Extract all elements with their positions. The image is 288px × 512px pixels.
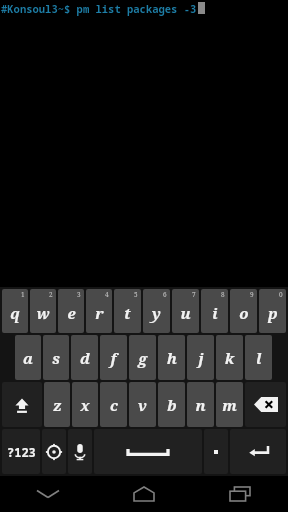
button[interactable] — [204, 429, 228, 474]
staticText: 3 — [77, 290, 81, 299]
button[interactable]: b — [158, 382, 185, 427]
staticText: c — [110, 395, 118, 415]
staticText: n — [195, 395, 206, 415]
button[interactable]: ?123 — [2, 429, 40, 474]
staticText: 6 — [163, 290, 167, 299]
staticText: h — [167, 348, 177, 368]
staticText: v — [138, 395, 147, 415]
staticText: j — [198, 348, 204, 368]
staticText: s — [52, 348, 60, 368]
other: Input settings — [41, 429, 67, 474]
button[interactable]: v — [129, 382, 156, 427]
button[interactable] — [68, 429, 92, 474]
staticText: y — [152, 303, 161, 323]
button[interactable]: j — [187, 335, 214, 380]
button[interactable]: 0 — [259, 289, 286, 333]
other: Space — [93, 429, 203, 474]
button[interactable]: z — [44, 382, 70, 427]
staticText: 2 — [49, 290, 53, 299]
staticText: 5 — [134, 290, 138, 299]
button[interactable]: 1 — [2, 289, 28, 333]
button[interactable]: m — [216, 382, 243, 427]
staticText: 9 — [250, 290, 254, 299]
staticText: q — [10, 303, 20, 323]
staticText: o — [239, 303, 249, 323]
staticText: 0 — [279, 290, 283, 299]
other: Backspace — [244, 382, 287, 427]
staticText: i — [212, 303, 218, 323]
staticText: t — [124, 303, 131, 323]
staticText: u — [180, 303, 191, 323]
staticText: l — [256, 348, 262, 368]
button[interactable]: 5 — [114, 289, 141, 333]
staticText: 7 — [192, 290, 196, 299]
button[interactable]: h — [158, 335, 185, 380]
button[interactable]: c — [100, 382, 127, 427]
staticText: m — [222, 395, 237, 415]
button[interactable]: 7 — [172, 289, 199, 333]
button[interactable]: 4 — [86, 289, 112, 333]
button[interactable]: x — [72, 382, 98, 427]
button[interactable]: l — [245, 335, 272, 380]
staticText: e — [67, 303, 76, 323]
staticText: d — [80, 348, 90, 368]
button[interactable] — [245, 382, 286, 427]
staticText: p — [268, 303, 278, 323]
staticText: #Konsoul3~$ pm list packages -3 — [1, 2, 197, 16]
staticText: x — [80, 395, 90, 415]
button[interactable]: a — [15, 335, 41, 380]
button[interactable]: Hide keyboard — [0, 476, 96, 512]
staticText: f — [110, 348, 117, 368]
button[interactable]: s — [43, 335, 69, 380]
staticText: g — [138, 348, 147, 368]
staticText: 1 — [21, 290, 25, 299]
button[interactable]: d — [71, 335, 98, 380]
button[interactable]: 2 — [30, 289, 56, 333]
staticText: a — [23, 348, 33, 368]
button[interactable]: g — [129, 335, 156, 380]
staticText: w — [36, 303, 50, 323]
other: Voice input — [67, 429, 93, 474]
button[interactable]: 8 — [201, 289, 228, 333]
staticText: b — [167, 395, 177, 415]
button[interactable]: 6 — [143, 289, 170, 333]
button[interactable]: 9 — [230, 289, 257, 333]
button[interactable]: f — [100, 335, 127, 380]
other: Enter — [229, 429, 287, 474]
staticText: z — [53, 395, 62, 415]
button[interactable]: 3 — [58, 289, 84, 333]
staticText: ?123 — [7, 444, 36, 460]
button[interactable] — [42, 429, 66, 474]
button[interactable] — [94, 429, 202, 474]
button[interactable] — [230, 429, 286, 474]
staticText: 8 — [221, 290, 225, 299]
button[interactable]: k — [216, 335, 243, 380]
button[interactable]: Home — [96, 476, 192, 512]
staticText: r — [95, 303, 104, 323]
button[interactable] — [2, 382, 42, 427]
button[interactable]: Recent apps — [192, 476, 288, 512]
button[interactable]: n — [187, 382, 214, 427]
staticText: k — [225, 348, 234, 368]
staticText: 4 — [105, 290, 109, 299]
other: Shift — [1, 382, 43, 427]
